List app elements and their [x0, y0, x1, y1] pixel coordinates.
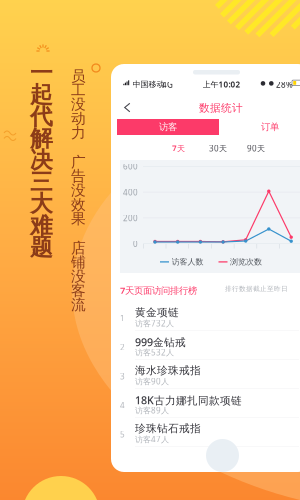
staticText: 999金钻戒 — [135, 335, 186, 349]
staticText: 90天 — [247, 143, 265, 154]
button[interactable]: 90天 — [247, 143, 265, 154]
staticText: 600 — [123, 161, 138, 172]
staticText: 28% — [276, 79, 293, 90]
staticText: 3 — [120, 371, 125, 382]
staticText: 果 — [71, 210, 86, 228]
button[interactable]: 访客 — [117, 119, 219, 135]
staticText: 200 — [123, 213, 138, 223]
staticText: 没 — [71, 181, 86, 199]
staticText: 访客90人 — [135, 376, 169, 387]
staticText: 访客89人 — [135, 405, 169, 416]
staticText: 员 — [71, 67, 86, 85]
staticText: 5 — [120, 429, 125, 440]
staticText: 排行数据截止至昨日 — [225, 285, 288, 293]
staticText: 黄金项链 — [135, 306, 179, 319]
staticText: 效 — [71, 196, 86, 214]
staticText: 难 — [30, 212, 53, 239]
staticText: 代 — [30, 103, 53, 130]
button[interactable]: 3 — [111, 360, 300, 389]
staticText: 访客人数 — [171, 257, 203, 267]
staticText: 访客732人 — [135, 318, 174, 329]
button[interactable]: 4 — [111, 389, 300, 418]
staticText: 起 — [30, 81, 53, 109]
staticText: 7天 — [172, 143, 185, 154]
button[interactable]: 5 — [111, 418, 300, 447]
button[interactable]: 2 — [111, 331, 300, 360]
staticText: 数据统计 — [199, 101, 243, 115]
staticText: 大 — [30, 190, 53, 218]
staticText: 访客532人 — [135, 347, 174, 358]
staticText: 30天 — [209, 143, 227, 154]
staticText: 上午10:02 — [202, 79, 240, 90]
staticText: 2 — [120, 342, 125, 353]
staticText: 4 — [120, 400, 125, 411]
staticText: 一 — [30, 59, 53, 87]
button[interactable]: 30天 — [209, 143, 227, 154]
staticText: 4G — [162, 79, 173, 90]
button[interactable]: Back — [119, 101, 143, 115]
staticText: 没 — [71, 267, 86, 285]
staticText: 浏览次数 — [230, 257, 262, 267]
staticText: 没 — [71, 95, 86, 113]
staticText: 动 — [71, 110, 86, 128]
staticText: 1 — [120, 313, 125, 324]
staticText: 力 — [71, 124, 86, 142]
staticText: 客 — [71, 282, 86, 300]
staticText: 访客47人 — [135, 434, 169, 445]
staticText: 告 — [71, 167, 86, 185]
staticText: 铺 — [71, 253, 86, 271]
staticText: 18K古力娜扎同款项链 — [135, 393, 242, 407]
staticText: 工 — [71, 81, 86, 99]
staticText: 珍珠钻石戒指 — [135, 422, 201, 435]
staticText: 访客 — [159, 121, 177, 133]
staticText: 400 — [123, 187, 138, 198]
button[interactable]: 1 — [111, 302, 300, 331]
staticText: 三 — [30, 168, 53, 196]
staticText: 店 — [71, 239, 86, 257]
staticText: 7天页面访问排行榜 — [120, 284, 197, 296]
staticText: 流 — [71, 296, 86, 314]
staticText: 中国移动 — [132, 79, 164, 89]
staticText: 题 — [30, 233, 53, 261]
button[interactable]: 7天 — [172, 143, 185, 154]
staticText: 决 — [30, 146, 53, 174]
staticText: 广 — [71, 153, 86, 171]
staticText: 解 — [30, 124, 53, 152]
staticText: 海水珍珠戒指 — [135, 364, 201, 377]
button[interactable]: 订单 — [219, 119, 300, 135]
staticText: 订单 — [261, 121, 279, 133]
staticText: 0 — [133, 239, 138, 249]
